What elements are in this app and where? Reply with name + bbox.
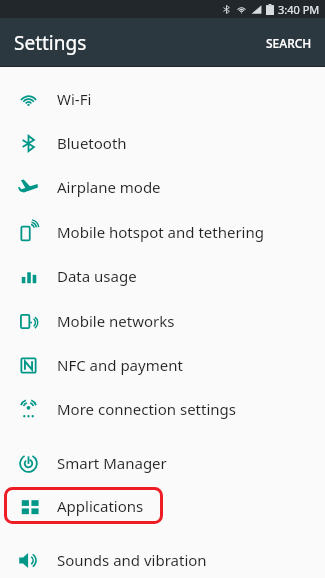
button[interactable]: Smart Manager — [0, 441, 325, 485]
button[interactable]: Mobile hotspot and tethering — [0, 210, 325, 254]
staticText: Data usage — [57, 266, 137, 286]
button[interactable]: Sounds and vibration — [0, 538, 325, 578]
button[interactable]: Wi-Fi — [0, 77, 325, 121]
staticText: Applications — [57, 496, 144, 516]
button[interactable]: Applications — [0, 484, 325, 528]
button[interactable]: NFC and payment — [0, 343, 325, 387]
staticText: More connection settings — [57, 399, 236, 419]
staticText: Bluetooth — [57, 133, 127, 153]
staticText: Settings — [14, 30, 87, 56]
button[interactable]: Data usage — [0, 254, 325, 298]
staticText: Mobile hotspot and tethering — [57, 222, 264, 242]
staticText: SEARCH — [266, 35, 312, 51]
button[interactable]: Bluetooth — [0, 121, 325, 165]
staticText: Mobile networks — [57, 311, 175, 331]
staticText: Wi-Fi — [57, 89, 92, 109]
button[interactable]: More connection settings — [0, 387, 325, 431]
staticText: Smart Manager — [57, 453, 167, 473]
staticText: NFC and payment — [57, 355, 183, 375]
button[interactable]: SEARCH — [253, 23, 325, 63]
button[interactable]: Mobile networks — [0, 299, 325, 343]
staticText: Sounds and vibration — [57, 550, 207, 570]
staticText: Airplane mode — [57, 177, 161, 197]
staticText: 3:40 PM — [278, 2, 320, 17]
button[interactable]: Airplane mode — [0, 165, 325, 209]
